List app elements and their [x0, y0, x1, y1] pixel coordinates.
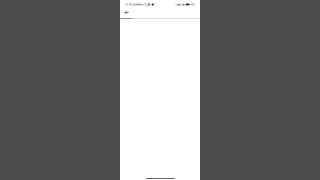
- button[interactable]: Back: [120, 8, 132, 17]
